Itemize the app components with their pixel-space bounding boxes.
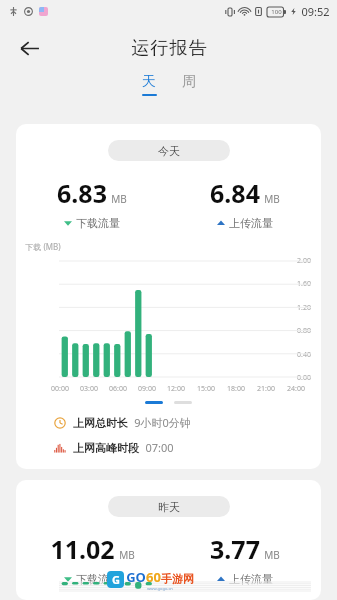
staticText: 运行报告 [131, 37, 207, 60]
staticText: 09:00 [138, 384, 156, 394]
staticText: 09:52 [301, 4, 330, 19]
staticText: 11.02 [50, 532, 115, 566]
staticText: 18:00 [227, 384, 245, 394]
staticText: 06:00 [109, 384, 127, 394]
button[interactable]: 昨天 [16, 480, 321, 600]
staticText: 1.60 [297, 279, 311, 287]
button[interactable]: Back [8, 27, 50, 69]
staticText: 下载流量 [76, 216, 120, 230]
staticText: MB [264, 192, 280, 206]
button[interactable]: 今天 [16, 124, 321, 469]
staticText: 6.83 [57, 176, 107, 210]
staticText: 周 [182, 73, 196, 91]
staticText: 0.00 [297, 373, 311, 381]
staticText: G [112, 572, 120, 587]
staticText: 0.40 [297, 350, 311, 358]
staticText: GO [126, 568, 146, 586]
staticText: 07:00 [145, 440, 174, 455]
staticText: MB [119, 548, 135, 562]
staticText: MB [264, 548, 280, 562]
button[interactable] [174, 401, 192, 404]
button[interactable]: 周 [171, 73, 207, 91]
staticText: www.gogo.cn [147, 586, 173, 591]
staticText: 24:00 [287, 384, 305, 394]
staticText: 天 [142, 73, 156, 91]
staticText: 03:00 [80, 384, 98, 394]
staticText: 上网高峰时段 [73, 441, 139, 455]
staticText: 上网总时长 [73, 416, 128, 430]
staticText: 100 [271, 8, 282, 16]
staticText: 6.84 [210, 176, 260, 210]
button[interactable] [145, 401, 163, 404]
staticText: 手游网 [161, 572, 194, 586]
staticText: 1.20 [297, 303, 311, 311]
staticText: 9小时0分钟 [134, 415, 191, 430]
staticText: 今天 [158, 144, 180, 158]
staticText: 下载 (MB) [25, 241, 61, 252]
staticText: 下载流量 [76, 572, 120, 586]
staticText: 2.00 [297, 256, 311, 264]
staticText: 12:00 [167, 384, 185, 394]
staticText: 上传流量 [229, 572, 273, 586]
staticText: 3.77 [210, 532, 260, 566]
staticText: 0.80 [297, 326, 311, 334]
staticText: 上传流量 [229, 216, 273, 230]
button[interactable]: 天 [131, 73, 167, 96]
staticText: 昨天 [158, 500, 180, 514]
staticText: 21:00 [257, 384, 275, 394]
staticText: 60 [146, 568, 161, 586]
staticText: 00:00 [51, 384, 69, 394]
staticText: 15:00 [197, 384, 215, 394]
staticText: MB [111, 192, 127, 206]
